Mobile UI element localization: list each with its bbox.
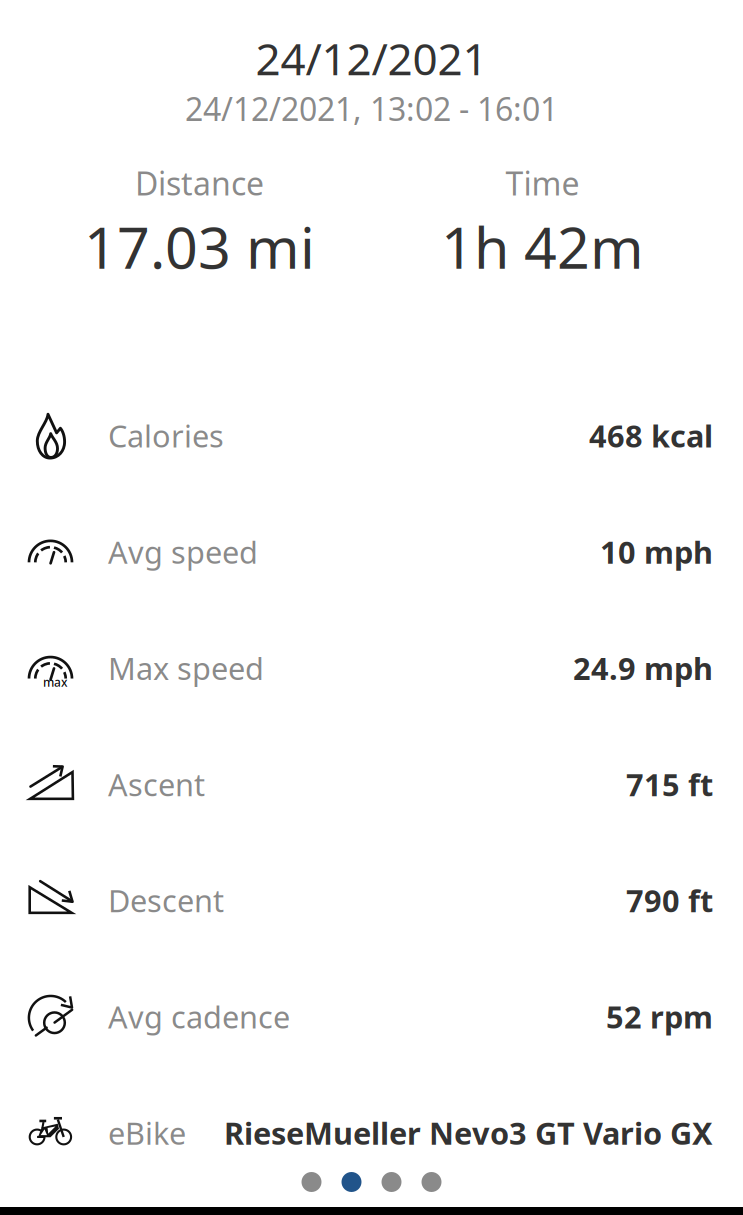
button[interactable]: Page 2, current page	[341, 1172, 361, 1192]
button[interactable]: Page 4	[421, 1172, 441, 1192]
staticText: 52 rpm	[606, 996, 713, 1037]
staticText: Distance	[135, 162, 264, 204]
staticText: 468 kcal	[589, 415, 713, 456]
staticText: Descent	[108, 880, 224, 921]
staticText: Max speed	[108, 648, 264, 688]
staticText: 790 ft	[626, 880, 713, 921]
staticText: Ascent	[108, 764, 205, 805]
staticText: 10 mph	[600, 531, 713, 572]
button[interactable]: Avg speed	[0, 494, 743, 610]
staticText: Avg cadence	[108, 996, 290, 1037]
button[interactable]: max	[0, 610, 743, 726]
staticText: 1h 42m	[441, 208, 644, 284]
staticText: max	[43, 674, 68, 690]
button[interactable]: eBike	[0, 1075, 743, 1191]
staticText: Calories	[108, 415, 224, 456]
staticText: RieseMueller Nevo3 GT Vario GX	[224, 1112, 713, 1153]
staticText: 24/12/2021, 13:02 - 16:01	[185, 87, 558, 130]
button[interactable]: Avg cadence	[0, 959, 743, 1075]
button[interactable]: Page 3	[381, 1172, 401, 1192]
button[interactable]: Descent	[0, 842, 743, 959]
staticText: Time	[505, 162, 579, 204]
button[interactable]: Calories	[0, 378, 743, 494]
staticText: 715 ft	[626, 764, 713, 805]
staticText: eBike	[108, 1112, 186, 1153]
staticText: 24.9 mph	[573, 648, 713, 688]
staticText: 17.03 mi	[84, 208, 315, 284]
staticText: 24/12/2021	[255, 29, 487, 87]
button[interactable]: Page 1	[301, 1172, 321, 1192]
staticText: Avg speed	[108, 531, 258, 572]
button[interactable]: Ascent	[0, 726, 743, 842]
